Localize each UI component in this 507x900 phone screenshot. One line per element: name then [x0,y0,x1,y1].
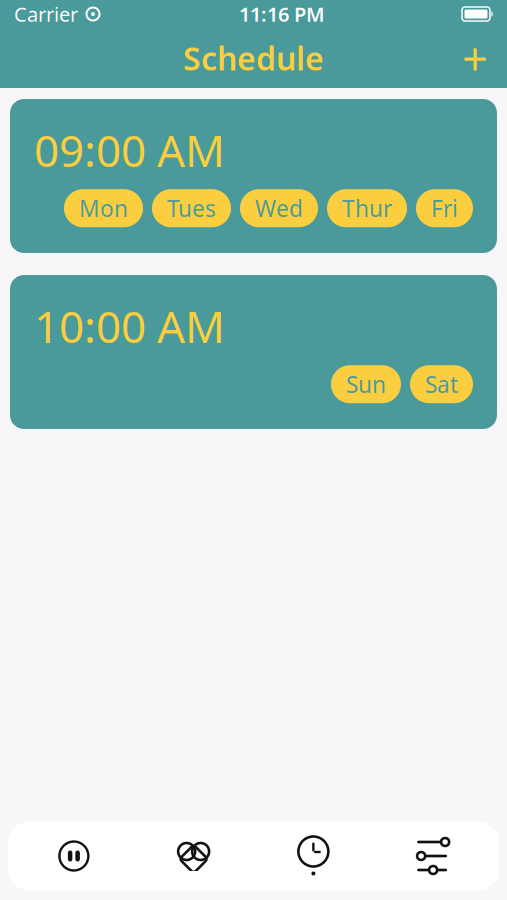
button[interactable]: 10:00 AM [10,275,497,429]
staticText: Fri [431,193,458,223]
staticText: 10:00 AM [34,297,225,355]
button[interactable]: Settings [373,825,493,887]
button[interactable]: Schedule [253,825,373,887]
button[interactable]: Sat [410,365,473,403]
button[interactable]: Quotes [14,825,134,887]
button[interactable]: Fri [416,189,473,227]
staticText: Tues [167,193,216,223]
button[interactable]: 09:00 AM [10,99,497,253]
button[interactable]: Thur [327,189,407,227]
staticText: Schedule [183,37,324,79]
staticText: Sun [346,369,386,399]
staticText: + [462,28,488,88]
button[interactable]: Tues [152,189,231,227]
button[interactable]: Sun [331,365,401,403]
button[interactable]: Mon [64,189,143,227]
staticText: Sat [425,369,458,399]
staticText: Carrier [14,1,78,27]
button[interactable]: Add schedule [453,36,497,80]
button[interactable]: Wed [240,189,318,227]
staticText: Thur [342,193,392,223]
staticText: Mon [79,193,128,223]
staticText: Wed [255,193,303,223]
staticText: 09:00 AM [34,121,225,179]
button[interactable]: Favorites [134,825,254,887]
staticText: 11:16 PM [239,1,325,27]
